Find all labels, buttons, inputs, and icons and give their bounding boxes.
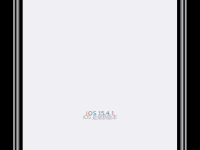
staticText: iOS 15.4.1 (86, 109, 114, 117)
staticText: iOS 是最新版本 (83, 113, 117, 121)
